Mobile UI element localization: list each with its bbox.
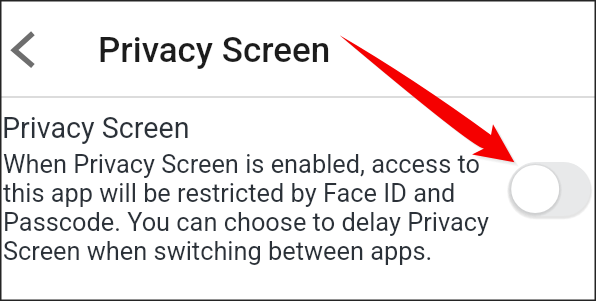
button[interactable]: Back xyxy=(0,22,46,78)
staticText: When Privacy Screen is enabled, access t… xyxy=(3,150,503,266)
button[interactable]: Privacy Screen toggle, off xyxy=(503,156,596,222)
staticText: Privacy Screen xyxy=(2,111,190,145)
staticText: Privacy Screen xyxy=(98,30,331,71)
